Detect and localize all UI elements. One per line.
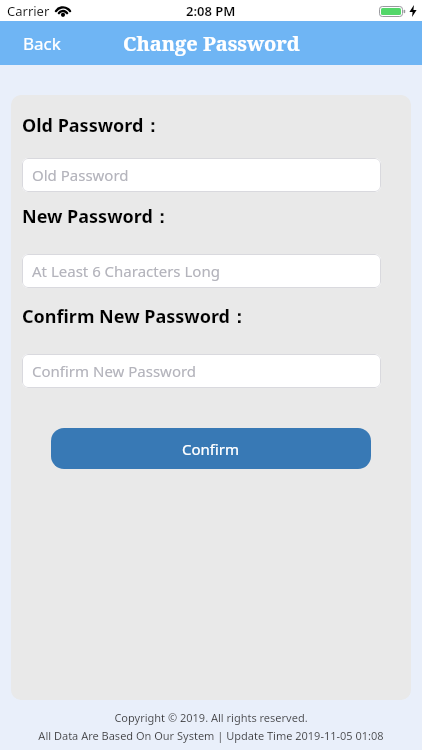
staticText: Copyright © 2019. All rights reserved. xyxy=(114,710,308,725)
staticText: Old Password xyxy=(32,165,129,185)
staticText: Confirm xyxy=(182,439,240,459)
staticText: Change Password xyxy=(123,30,300,57)
button[interactable]: Old Password xyxy=(22,158,381,192)
staticText: Carrier xyxy=(7,2,50,20)
staticText: All Data Are Based On Our System | Updat… xyxy=(38,728,384,743)
staticText: Old Password： xyxy=(22,113,162,138)
staticText: 2:08 PM xyxy=(186,2,236,20)
staticText: Back xyxy=(23,32,61,55)
staticText: At Least 6 Characters Long xyxy=(32,261,220,281)
button[interactable]: Back xyxy=(16,26,68,61)
staticText: Confirm New Password： xyxy=(22,304,248,329)
staticText: New Password： xyxy=(22,204,171,229)
staticText: Confirm New Password xyxy=(32,361,197,381)
button[interactable]: Confirm New Password xyxy=(22,354,381,388)
button[interactable]: At Least 6 Characters Long xyxy=(22,254,381,288)
button[interactable]: Confirm xyxy=(51,428,371,469)
